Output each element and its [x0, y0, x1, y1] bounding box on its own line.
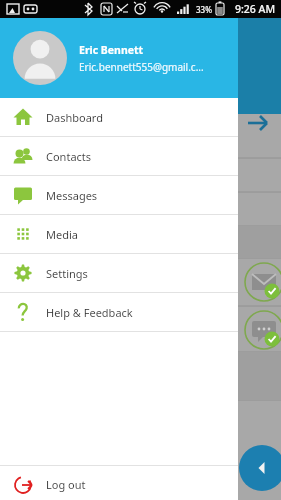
staticText: Contacts [46, 149, 92, 164]
button[interactable]: Contacts [0, 137, 238, 175]
button[interactable]: Settings [0, 254, 238, 292]
staticText: Media [46, 227, 78, 242]
staticText: Messages [46, 188, 98, 203]
button[interactable]: Previous [239, 445, 281, 491]
staticText: 33% [196, 4, 212, 15]
staticText: Settings [46, 266, 88, 281]
button[interactable]: Messages [0, 176, 238, 214]
staticText: Dashboard [46, 110, 103, 125]
staticText: Log out [46, 477, 86, 492]
staticText: 9:26 AM [235, 2, 276, 16]
staticText: Help & Feedback [46, 305, 133, 320]
staticText: Eric Bennett [79, 43, 144, 57]
button[interactable]: Dashboard [0, 98, 238, 136]
staticText: Eric.bennett555@gmail.c... [79, 60, 204, 74]
button[interactable]: Media [0, 215, 238, 253]
button[interactable]: Log out [0, 466, 238, 500]
button[interactable]: Help & Feedback [0, 293, 238, 331]
